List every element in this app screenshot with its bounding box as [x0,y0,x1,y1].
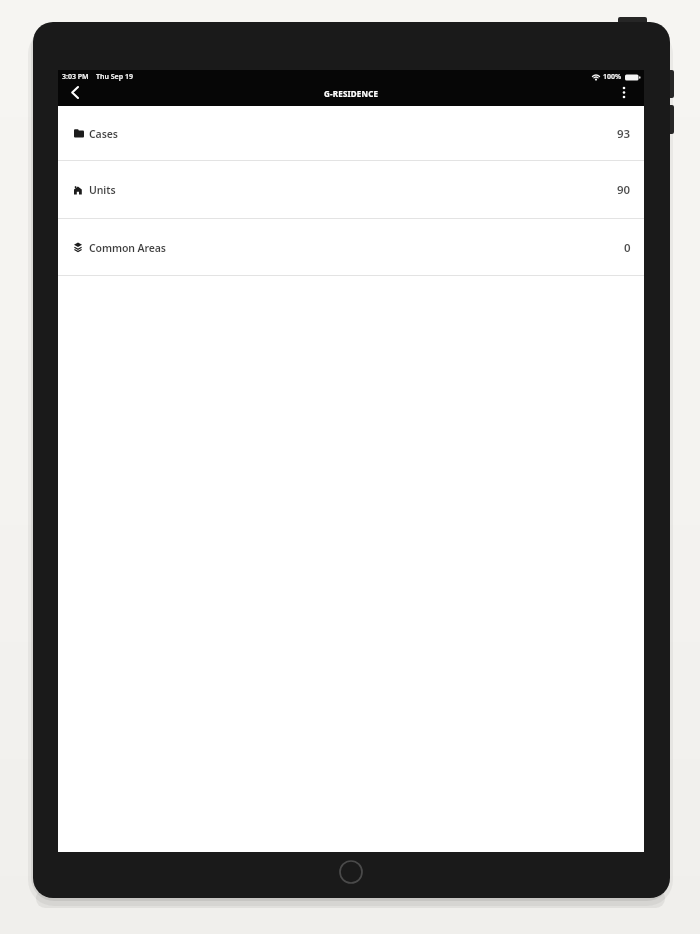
staticText: 3:03 PM [62,72,89,82]
staticText: Thu Sep 19 [96,72,133,82]
staticText: 90 [617,182,631,198]
button[interactable]: Cases [58,106,644,161]
staticText: G-RESIDENCE [324,88,379,99]
staticText: Units [89,183,116,197]
button[interactable]: Units [58,161,644,219]
button[interactable] [339,860,363,884]
button[interactable] [613,82,635,103]
staticText: Common Areas [89,241,166,255]
staticText: 0 [624,240,631,256]
staticText: 100% [603,72,622,82]
staticText: Cases [89,127,118,141]
staticText: 93 [617,126,631,142]
button[interactable]: Common Areas [58,219,644,276]
button[interactable] [65,82,85,103]
